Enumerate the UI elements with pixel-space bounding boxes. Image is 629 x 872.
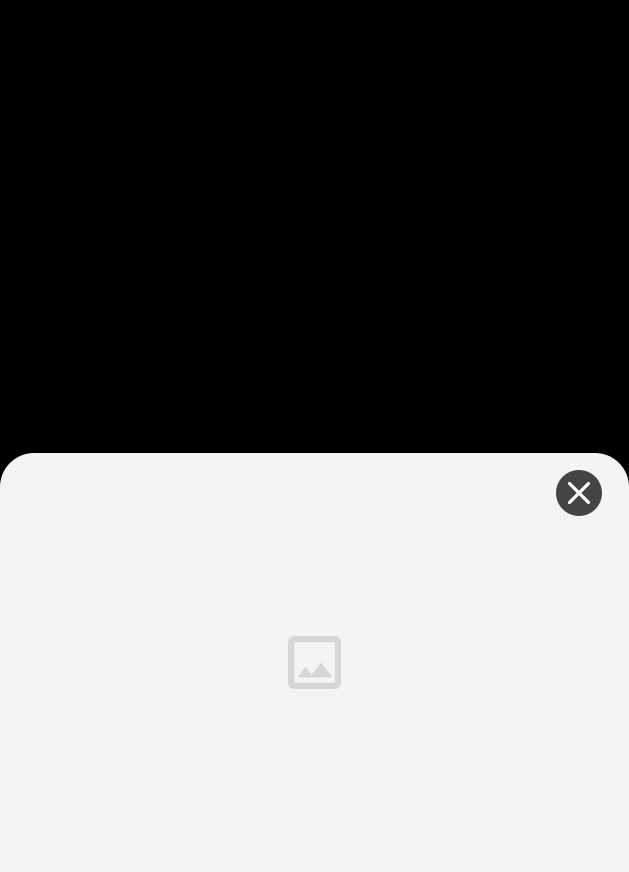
button[interactable]: Close [556,470,602,516]
